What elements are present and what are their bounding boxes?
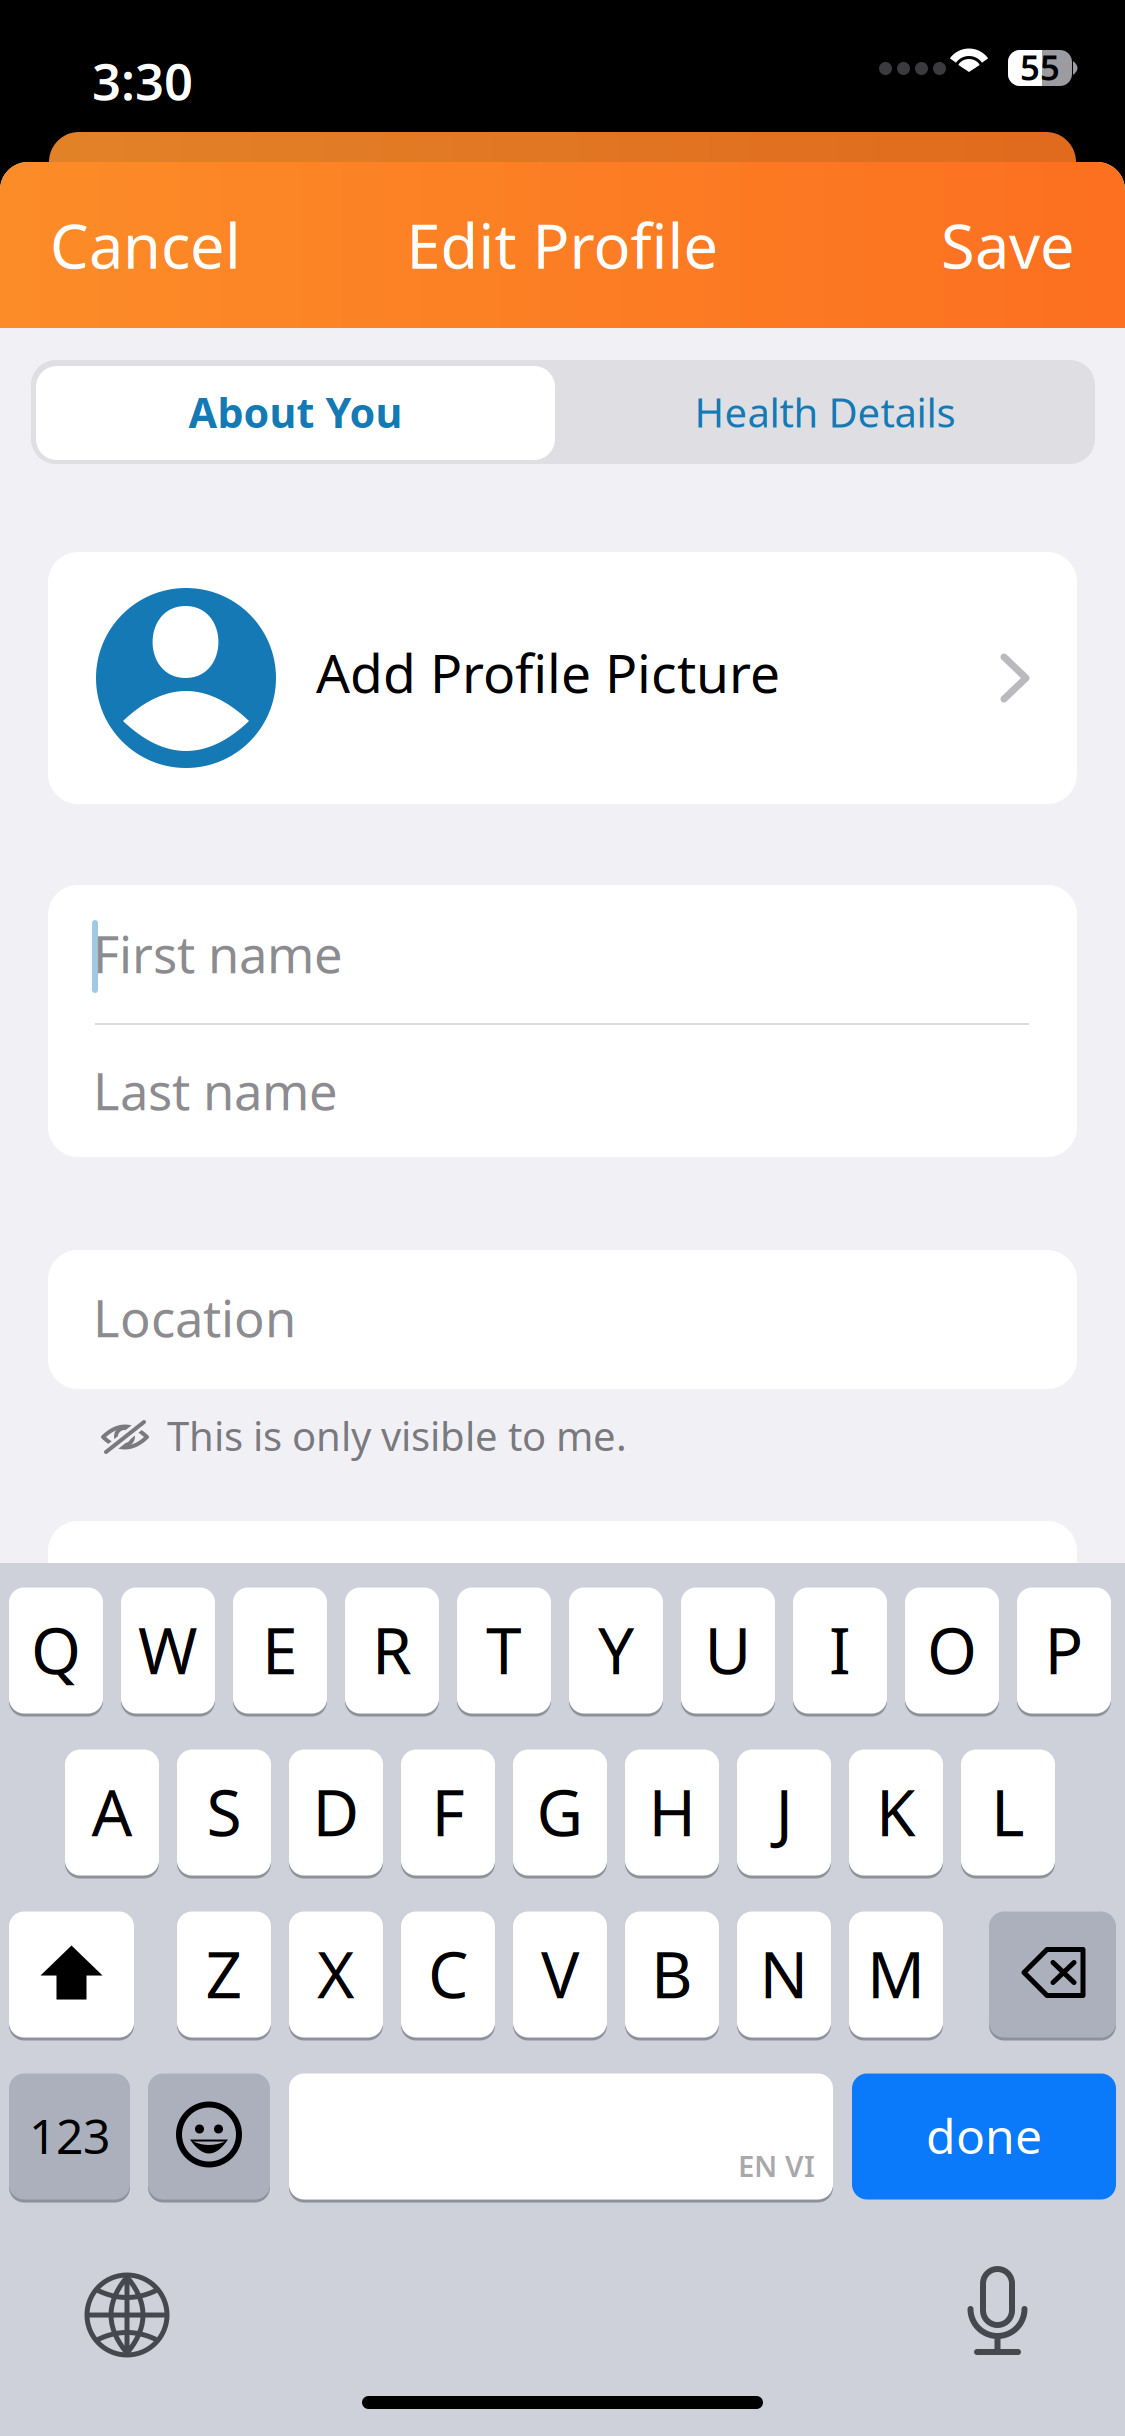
staticText: F: [431, 1769, 464, 1854]
staticText: P: [1044, 1607, 1083, 1692]
button[interactable]: Location: [48, 1250, 1077, 1389]
staticText: About You: [188, 385, 402, 439]
staticText: W: [138, 1607, 198, 1692]
staticText: E: [262, 1607, 298, 1692]
button[interactable]: Save: [911, 178, 1125, 312]
button[interactable]: L: [961, 1748, 1055, 1877]
button[interactable]: F: [401, 1748, 495, 1877]
staticText: 55: [1020, 44, 1060, 90]
staticText: A: [91, 1769, 132, 1854]
button[interactable]: Last name: [48, 1025, 1077, 1157]
button[interactable]: Q: [9, 1586, 103, 1715]
staticText: C: [428, 1931, 468, 2016]
button[interactable]: done: [852, 2072, 1116, 2201]
staticText: Health Details: [694, 385, 955, 438]
button[interactable]: Y: [569, 1586, 663, 1715]
staticText: Q: [31, 1607, 81, 1692]
button[interactable]: I: [793, 1586, 887, 1715]
staticText: L: [991, 1769, 1025, 1854]
button[interactable]: U: [681, 1586, 775, 1715]
button[interactable]: S: [177, 1748, 271, 1877]
staticText: U: [704, 1607, 751, 1692]
staticText: 3:30: [92, 47, 193, 114]
button[interactable]: Shift: [9, 1910, 134, 2039]
staticText: Location: [93, 1284, 296, 1351]
button[interactable]: Delete: [989, 1910, 1116, 2039]
staticText: H: [648, 1769, 695, 1854]
staticText: Save: [941, 204, 1075, 286]
staticText: This is only visible to me.: [167, 1409, 627, 1462]
button[interactable]: Health Details: [560, 366, 1090, 460]
staticText: N: [759, 1931, 808, 2016]
staticText: T: [486, 1607, 522, 1692]
button[interactable]: T: [457, 1586, 551, 1715]
staticText: I: [829, 1607, 851, 1692]
staticText: K: [876, 1769, 916, 1854]
staticText: 123: [29, 2104, 110, 2167]
staticText: G: [536, 1769, 583, 1854]
button[interactable]: Add Profile Picture: [48, 552, 1077, 804]
button[interactable]: Change keyboard: [87, 2275, 167, 2355]
staticText: B: [651, 1931, 693, 2016]
button[interactable]: J: [737, 1748, 831, 1877]
staticText: V: [541, 1931, 579, 2016]
staticText: O: [927, 1607, 977, 1692]
staticText: Cancel: [50, 204, 241, 286]
button[interactable]: G: [513, 1748, 607, 1877]
button[interactable]: 123: [9, 2072, 130, 2201]
button[interactable]: B: [625, 1910, 719, 2039]
staticText: Edit Profile: [406, 204, 718, 286]
button[interactable]: A: [65, 1748, 159, 1877]
staticText: Last name: [93, 1057, 338, 1124]
button[interactable]: H: [625, 1748, 719, 1877]
button[interactable]: D: [289, 1748, 383, 1877]
button[interactable]: P: [1017, 1586, 1111, 1715]
staticText: EN VI: [738, 2146, 815, 2185]
button[interactable]: V: [513, 1910, 607, 2039]
button[interactable]: E: [233, 1586, 327, 1715]
button[interactable]: K: [849, 1748, 943, 1877]
staticText: done: [926, 2104, 1042, 2167]
staticText: D: [312, 1769, 359, 1854]
staticText: Z: [205, 1931, 242, 2016]
button[interactable]: Z: [177, 1910, 271, 2039]
staticText: Add Profile Picture: [316, 637, 780, 708]
button[interactable]: C: [401, 1910, 495, 2039]
button[interactable]: Space: [289, 2072, 833, 2201]
staticText: J: [775, 1769, 792, 1854]
staticText: First name: [93, 920, 343, 987]
button[interactable]: About You: [36, 366, 555, 460]
button[interactable]: W: [121, 1586, 215, 1715]
staticText: S: [206, 1769, 241, 1854]
staticText: R: [372, 1607, 412, 1692]
staticText: M: [867, 1931, 925, 2016]
button[interactable]: R: [345, 1586, 439, 1715]
staticText: X: [317, 1931, 355, 2016]
button[interactable]: O: [905, 1586, 999, 1715]
button[interactable]: N: [737, 1910, 831, 2039]
button[interactable]: M: [849, 1910, 943, 2039]
button[interactable]: Dictation: [969, 2269, 1026, 2355]
button[interactable]: First name: [48, 885, 1077, 1023]
button[interactable]: Emoji: [148, 2072, 270, 2201]
button[interactable]: Cancel: [0, 178, 271, 312]
staticText: Y: [598, 1607, 634, 1692]
button[interactable]: X: [289, 1910, 383, 2039]
